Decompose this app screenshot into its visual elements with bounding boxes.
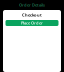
staticText: Order Details	[19, 2, 45, 8]
staticText: Place Order	[21, 20, 43, 26]
staticText: Checkout	[22, 12, 42, 18]
button[interactable]: Place Order	[5, 20, 58, 26]
